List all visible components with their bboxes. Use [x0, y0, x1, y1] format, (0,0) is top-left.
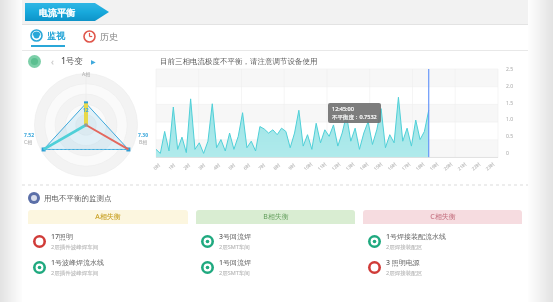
staticText: A相失衡: [95, 212, 121, 222]
staticText: 监视: [47, 30, 65, 41]
staticText: 11时: [316, 160, 328, 172]
button[interactable]: 1号回流焊: [196, 254, 355, 280]
staticText: 7.52: [24, 132, 34, 139]
staticText: 不平衡度：0.7532: [332, 113, 377, 121]
staticText: 1时: [167, 161, 177, 171]
staticText: 7.30: [138, 132, 148, 139]
button[interactable]: 监视: [28, 29, 67, 42]
staticText: 17时: [400, 160, 412, 172]
staticText: 9时: [287, 161, 297, 171]
button[interactable]: ▶: [89, 58, 98, 65]
staticText: 19时: [428, 160, 440, 172]
staticText: 21时: [456, 160, 468, 172]
staticText: 目前三相电流极度不平衡，请注意调节设备使用: [160, 57, 318, 66]
button[interactable]: 1号波峰焊流水线: [28, 254, 188, 280]
staticText: 18时: [414, 160, 426, 172]
staticText: 0.5: [506, 133, 514, 140]
staticText: 22时: [470, 160, 482, 172]
staticText: 电流平衡: [39, 7, 75, 18]
staticText: 1号回流焊: [219, 258, 252, 268]
staticText: 13时: [344, 160, 356, 172]
staticText: 16时: [386, 160, 398, 172]
staticText: 1.0: [506, 116, 514, 123]
staticText: 17照明: [51, 232, 74, 242]
button[interactable]: 17照明: [28, 228, 188, 254]
staticText: A相: [82, 71, 91, 78]
staticText: 1号焊接装配流水线: [386, 232, 447, 242]
staticText: 2层插件波峰焊车间: [51, 269, 99, 277]
button[interactable]: 历史: [81, 30, 120, 43]
button[interactable]: B相失衡: [196, 210, 355, 302]
staticText: 3号回流焊: [219, 232, 252, 242]
staticText: B相: [139, 139, 148, 146]
button[interactable]: Device: [28, 55, 41, 68]
staticText: C相: [24, 139, 33, 146]
staticText: 2层焊接装配区: [386, 243, 423, 251]
button[interactable]: C相失衡: [363, 210, 522, 302]
staticText: 用电不平衡的监测点: [44, 194, 112, 203]
staticText: 10时: [302, 160, 314, 172]
staticText: 0时: [152, 161, 162, 171]
staticText: 20时: [442, 160, 454, 172]
staticText: 0: [506, 150, 509, 157]
staticText: 2层插件波峰焊车间: [51, 243, 99, 251]
staticText: 7时: [257, 161, 267, 171]
button[interactable]: 电流平衡: [25, 3, 109, 21]
staticText: 2.0: [506, 83, 514, 90]
staticText: 历史: [100, 31, 118, 42]
staticText: 2时: [182, 161, 192, 171]
staticText: 15时: [372, 160, 384, 172]
staticText: 12:45:00: [332, 105, 354, 112]
staticText: 2层SMT车间: [219, 269, 250, 277]
staticText: 2.5: [506, 66, 514, 73]
staticText: 8时: [272, 161, 282, 171]
button[interactable]: 1号焊接装配流水线: [363, 228, 522, 254]
staticText: 4时: [212, 161, 222, 171]
staticText: 12: [83, 107, 89, 114]
staticText: 3时: [197, 161, 207, 171]
staticText: 1.5: [506, 100, 514, 107]
staticText: 12时: [330, 160, 342, 172]
staticText: 3 照明电源: [386, 258, 420, 268]
staticText: 23时: [484, 160, 496, 172]
staticText: C相失衡: [430, 212, 456, 222]
staticText: 5时: [227, 161, 237, 171]
button[interactable]: 3号回流焊: [196, 228, 355, 254]
button[interactable]: 1号变: [61, 55, 83, 67]
staticText: 6时: [242, 161, 252, 171]
button[interactable]: 3 照明电源: [363, 254, 522, 280]
staticText: 1号波峰焊流水线: [51, 258, 105, 268]
button[interactable]: A相失衡: [28, 210, 188, 302]
staticText: B相失衡: [263, 212, 289, 222]
staticText: 14时: [358, 160, 370, 172]
button[interactable]: ‹: [49, 55, 56, 67]
staticText: 2层焊接装配区: [386, 269, 423, 277]
staticText: 2层SMT车间: [219, 243, 250, 251]
